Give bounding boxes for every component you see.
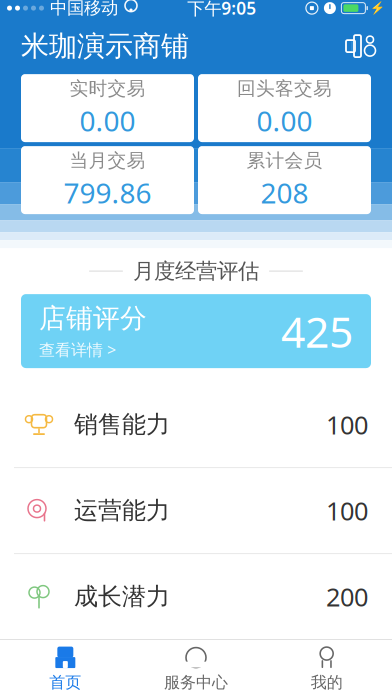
button[interactable]: 店铺评分 <box>21 294 371 368</box>
staticText: 200 <box>326 580 368 613</box>
staticText: 米珈演示商铺 <box>21 29 189 63</box>
staticText: ⚡ <box>370 1 385 15</box>
button[interactable]: 首页 <box>0 640 131 696</box>
staticText: 799.86 <box>63 174 151 211</box>
staticText: 店铺评分 <box>39 302 147 335</box>
staticText: 实时交易 <box>69 77 145 100</box>
button[interactable]: 累计会员 <box>198 146 371 214</box>
staticText: 首页 <box>49 673 81 692</box>
button[interactable]: 服务中心 <box>131 640 261 696</box>
staticText: 我的 <box>311 673 343 692</box>
staticText: 销售能力 <box>74 410 170 439</box>
button[interactable]: 销售能力 <box>0 382 392 467</box>
staticText: 下午9:05 <box>187 0 256 20</box>
staticText: 100 <box>326 408 368 441</box>
staticText: 运营能力 <box>74 496 170 525</box>
staticText: 0.00 <box>256 102 312 139</box>
staticText: 425 <box>281 303 353 359</box>
button[interactable]: 我的 <box>261 640 392 696</box>
button[interactable]: 回头客交易 <box>198 74 371 142</box>
staticText: 查看详情 > <box>39 339 116 360</box>
staticText: 208 <box>260 174 308 211</box>
button[interactable]: 公告 <box>339 24 383 68</box>
staticText: 100 <box>326 494 368 527</box>
staticText: 累计会员 <box>246 149 322 172</box>
staticText: 0.00 <box>79 102 135 139</box>
staticText: 回头客交易 <box>237 77 332 100</box>
button[interactable]: 当月交易 <box>21 146 194 214</box>
staticText: 成长潜力 <box>74 582 170 611</box>
button[interactable]: 运营能力 <box>0 468 392 553</box>
staticText: 服务中心 <box>164 673 228 692</box>
staticText: 中国移动 <box>50 0 118 19</box>
staticText: 当月交易 <box>69 149 145 172</box>
button[interactable]: 成长潜力 <box>0 554 392 639</box>
staticText: 月度经营评估 <box>133 258 259 284</box>
button[interactable]: 实时交易 <box>21 74 194 142</box>
